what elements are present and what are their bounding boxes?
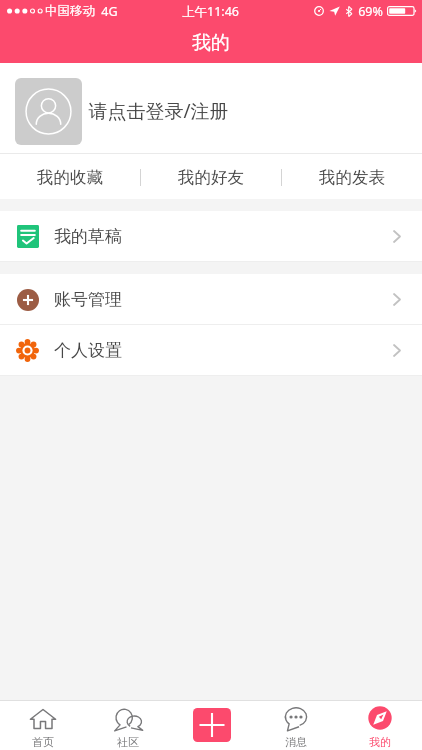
button[interactable]: 消息 — [254, 701, 338, 750]
staticText: 个人设置 — [54, 340, 122, 361]
staticText: 消息 — [285, 735, 307, 749]
staticText: 中国移动 — [45, 3, 95, 19]
button[interactable]: Create new post — [170, 701, 254, 750]
staticText: 我的 — [192, 31, 230, 55]
staticText: 首页 — [32, 735, 54, 749]
button[interactable]: 首页 — [0, 701, 85, 750]
staticText: 我的收藏 — [37, 167, 103, 188]
staticText: 69% — [358, 3, 383, 20]
button[interactable]: 我的 — [338, 701, 422, 750]
button[interactable]: 个人设置 — [0, 325, 422, 376]
button[interactable]: 我的收藏 — [0, 156, 140, 199]
button[interactable]: 我的草稿 — [0, 211, 422, 262]
button[interactable]: Avatar, tap to log in — [15, 78, 82, 145]
button[interactable]: 我的好友 — [141, 156, 281, 199]
staticText: 我的 — [369, 735, 391, 749]
button[interactable]: 社区 — [85, 701, 170, 750]
staticText: 我的草稿 — [54, 226, 122, 247]
staticText: 4G — [101, 3, 118, 20]
staticText: 账号管理 — [54, 289, 122, 310]
staticText: 我的发表 — [319, 167, 385, 188]
button[interactable]: 账号管理 — [0, 274, 422, 325]
button[interactable]: 我的发表 — [282, 156, 422, 199]
staticText: 上午11:46 — [182, 3, 239, 20]
staticText: 社区 — [117, 735, 139, 749]
staticText: 我的好友 — [178, 167, 244, 188]
staticText: 请点击登录/注册 — [88, 98, 229, 124]
